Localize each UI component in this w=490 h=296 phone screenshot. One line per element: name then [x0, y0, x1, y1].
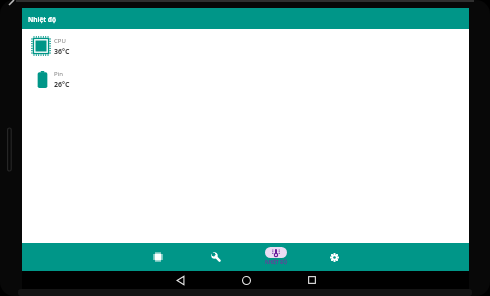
button[interactable]	[213, 271, 279, 289]
staticText: 26°C	[54, 80, 70, 90]
button[interactable]	[279, 271, 345, 289]
button[interactable]: CPU	[22, 29, 469, 62]
staticText: Nhiệt độ	[28, 15, 57, 24]
button[interactable]: Pin	[22, 62, 469, 95]
button[interactable]	[128, 243, 187, 271]
button[interactable]: NHIỆT ĐỘ	[246, 243, 305, 271]
staticText: NHIỆT ĐỘ	[265, 259, 287, 265]
button[interactable]	[305, 243, 364, 271]
staticText: 36°C	[54, 47, 70, 57]
staticText: Pin	[54, 70, 63, 78]
staticText: CPU	[54, 37, 66, 45]
button[interactable]	[187, 243, 246, 271]
button[interactable]	[147, 271, 213, 289]
